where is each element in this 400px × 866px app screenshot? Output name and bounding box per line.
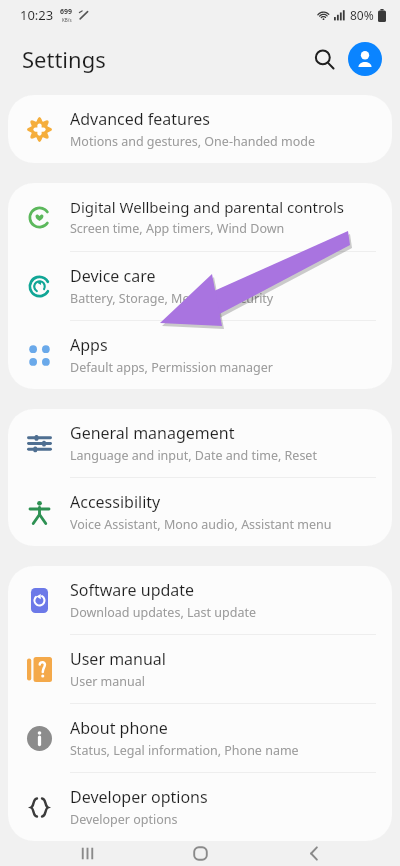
staticText: 699: [60, 7, 73, 17]
staticText: Device care: [70, 265, 156, 287]
button[interactable]: Search: [304, 39, 344, 79]
button[interactable]: Recent apps: [60, 841, 114, 866]
staticText: Download updates, Last update: [70, 604, 256, 621]
staticText: Screen time, App timers, Wind Down: [70, 220, 285, 237]
staticText: Settings: [22, 44, 106, 74]
staticText: Language and input, Date and time, Reset: [70, 447, 317, 464]
button[interactable]: Apps: [8, 321, 392, 389]
staticText: User manual: [70, 673, 145, 690]
staticText: General management: [70, 422, 235, 444]
button[interactable]: Home: [173, 841, 227, 866]
staticText: Status, Legal information, Phone name: [70, 742, 299, 759]
button[interactable]: User manual: [8, 635, 392, 703]
button[interactable]: Back: [287, 841, 341, 866]
staticText: Apps: [70, 334, 108, 356]
staticText: Digital Wellbeing and parental controls: [70, 197, 344, 217]
staticText: KB/s: [62, 17, 72, 23]
staticText: Advanced features: [70, 108, 210, 130]
staticText: Motions and gestures, One-handed mode: [70, 133, 316, 150]
staticText: Accessibility: [70, 491, 161, 513]
staticText: About phone: [70, 717, 168, 739]
button[interactable]: Digital Wellbeing and parental controls: [8, 183, 392, 251]
staticText: Developer options: [70, 811, 178, 828]
button[interactable]: Developer options: [8, 773, 392, 841]
staticText: Voice Assistant, Mono audio, Assistant m…: [70, 516, 332, 533]
staticText: 80%: [350, 7, 374, 23]
staticText: Default apps, Permission manager: [70, 359, 273, 376]
button[interactable]: General management: [8, 409, 392, 477]
button[interactable]: Software update: [8, 566, 392, 634]
staticText: 10:23: [20, 6, 54, 24]
button[interactable]: Advanced features: [8, 95, 392, 163]
button[interactable]: Accessibility: [8, 478, 392, 546]
staticText: Battery, Storage, Memory, Security: [70, 290, 274, 307]
staticText: User manual: [70, 648, 166, 670]
button[interactable]: Device care: [8, 252, 392, 320]
staticText: Software update: [70, 579, 195, 601]
button[interactable]: About phone: [8, 704, 392, 772]
staticText: Developer options: [70, 786, 208, 808]
button[interactable]: Account: [348, 42, 382, 76]
